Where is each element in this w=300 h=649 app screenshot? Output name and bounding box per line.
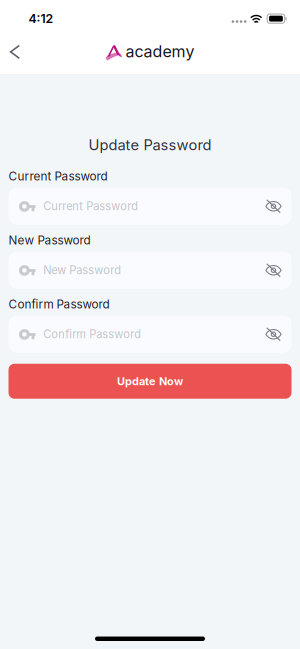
- staticText: Confirm Password: [8, 297, 109, 311]
- button[interactable]: Show New Password: [255, 252, 291, 289]
- staticText: Update Password: [88, 136, 211, 154]
- staticText: 4:12: [28, 11, 53, 26]
- button[interactable]: Show Confirm Password: [255, 316, 291, 353]
- button[interactable]: Back: [0, 30, 30, 74]
- button[interactable]: Update Now: [8, 364, 291, 399]
- staticText: Current Password: [43, 200, 138, 213]
- staticText: Current Password: [8, 169, 107, 183]
- staticText: Update Now: [117, 375, 183, 388]
- staticText: Confirm Password: [43, 328, 141, 341]
- button[interactable]: Show Current Password: [255, 188, 291, 225]
- staticText: New Password: [43, 264, 121, 277]
- staticText: academy: [125, 42, 194, 61]
- staticText: New Password: [8, 233, 90, 247]
